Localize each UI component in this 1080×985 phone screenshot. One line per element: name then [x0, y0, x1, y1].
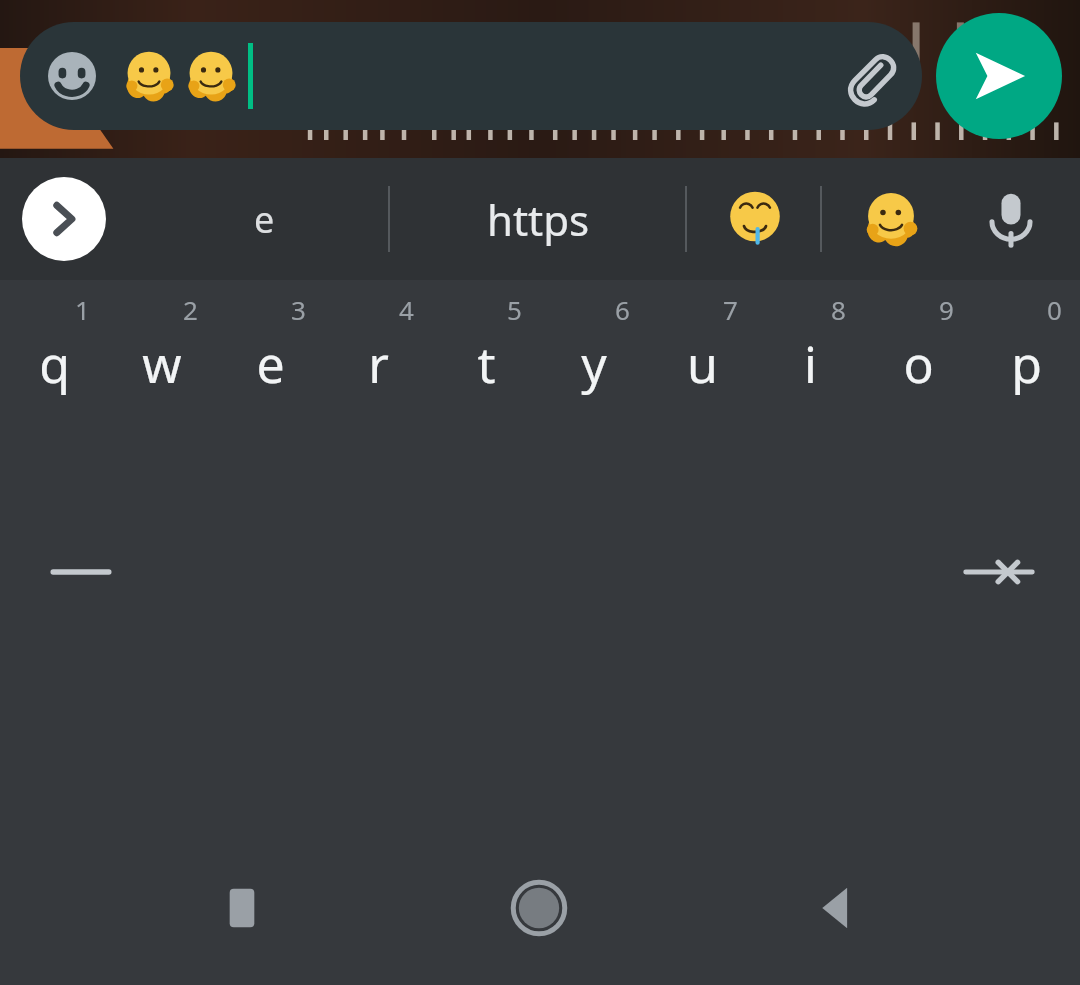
button[interactable]: Melting face [826, 158, 956, 280]
button[interactable]: Expand toolbar [22, 177, 106, 261]
staticText: e [256, 330, 285, 398]
button[interactable]: Home [484, 853, 594, 963]
staticText: 7 [723, 292, 738, 327]
staticText: r [368, 330, 389, 398]
button[interactable]: Emoji [20, 22, 922, 130]
staticText: 9 [939, 292, 954, 327]
staticText: y [581, 330, 607, 398]
button[interactable]: Send [936, 13, 1062, 139]
button[interactable]: Drooling face [690, 158, 820, 280]
staticText: p [1011, 330, 1042, 398]
staticText: 2 [183, 292, 198, 327]
button[interactable]: Voice input [956, 164, 1066, 274]
staticText: q [39, 330, 70, 398]
staticText: w [142, 330, 182, 398]
button[interactable]: p [972, 292, 1080, 420]
staticText: 0 [1047, 292, 1062, 327]
button[interactable]: Recent apps [187, 853, 297, 963]
button[interactable]: e [216, 292, 324, 420]
staticText: i [804, 330, 817, 398]
staticText: 5 [507, 292, 522, 327]
button[interactable]: t [432, 292, 540, 420]
staticText: o [903, 330, 934, 398]
button[interactable]: Back [782, 853, 892, 963]
staticText: t [477, 330, 496, 398]
staticText: 3 [291, 292, 306, 327]
button[interactable]: w [108, 292, 216, 420]
staticText: 4 [399, 292, 414, 327]
button[interactable]: r [324, 292, 432, 420]
button[interactable]: o [864, 292, 972, 420]
button[interactable]: Emoji [44, 48, 100, 104]
staticText: e [254, 195, 275, 244]
button[interactable]: y [540, 292, 648, 420]
button[interactable]: q [0, 292, 108, 420]
button[interactable]: u [648, 292, 756, 420]
button[interactable]: https [392, 158, 684, 280]
button[interactable]: Attach [838, 44, 902, 108]
staticText: u [687, 330, 718, 398]
staticText: 8 [831, 292, 846, 327]
staticText: 6 [615, 292, 630, 327]
button[interactable]: e [140, 158, 388, 280]
button[interactable]: i [756, 292, 864, 420]
staticText: 1 [75, 292, 90, 327]
staticText: https [487, 191, 590, 248]
